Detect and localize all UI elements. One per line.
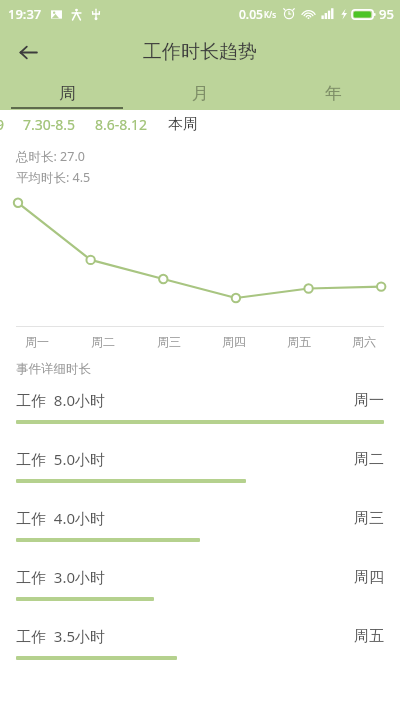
button[interactable]: 月 — [134, 76, 267, 110]
button[interactable]: 工作 3.5小时 — [0, 626, 400, 685]
staticText: 7.30-8.5 — [23, 115, 76, 134]
staticText: 周四 — [222, 334, 246, 349]
staticText: 95 — [379, 5, 394, 23]
button[interactable]: 周 — [0, 76, 134, 110]
button[interactable]: 年 — [267, 76, 400, 110]
button[interactable]: 工作 3.0小时 — [0, 567, 400, 626]
staticText: 周四 — [354, 568, 384, 587]
staticText: 周五 — [287, 334, 311, 349]
button[interactable]: 工作 8.0小时 — [0, 390, 400, 449]
button[interactable]: 本周 — [168, 115, 198, 134]
staticText: 周六 — [352, 334, 376, 349]
staticText: K/s — [264, 9, 277, 20]
staticText: 总时长: 27.0 — [16, 148, 85, 165]
staticText: 周一 — [354, 391, 384, 410]
staticText: 月 — [192, 83, 209, 104]
staticText: 周二 — [354, 450, 384, 469]
staticText: 周一 — [25, 334, 49, 349]
staticText: 平均时长: 4.5 — [16, 169, 91, 186]
staticText: 周二 — [91, 334, 115, 349]
button[interactable]: 工作 4.0小时 — [0, 508, 400, 567]
staticText: 19:37 — [8, 5, 42, 23]
staticText: 工作 5.0小时 — [16, 449, 105, 469]
staticText: 工作 3.5小时 — [16, 626, 105, 646]
staticText: 周三 — [157, 334, 181, 349]
staticText: 工作时长趋势 — [143, 40, 257, 64]
staticText: 事件详细时长 — [16, 361, 91, 377]
staticText: 8.6-8.12 — [95, 115, 148, 134]
staticText: 周 — [59, 83, 76, 104]
staticText: 工作 8.0小时 — [16, 390, 105, 410]
staticText: 工作 4.0小时 — [16, 508, 105, 528]
button[interactable]: 返回 — [8, 32, 48, 72]
button[interactable]: 9 — [0, 115, 9, 134]
button[interactable]: 工作 5.0小时 — [0, 449, 400, 508]
staticText: 工作 3.0小时 — [16, 567, 105, 587]
staticText: 周五 — [354, 627, 384, 646]
staticText: 年 — [325, 83, 342, 104]
staticText: 0.05 — [239, 6, 263, 22]
staticText: 周三 — [354, 509, 384, 528]
staticText: 本周 — [168, 115, 198, 134]
staticText: 9 — [0, 115, 5, 134]
button[interactable]: 7.30-8.5 — [23, 115, 76, 134]
button[interactable]: 8.6-8.12 — [95, 115, 148, 134]
